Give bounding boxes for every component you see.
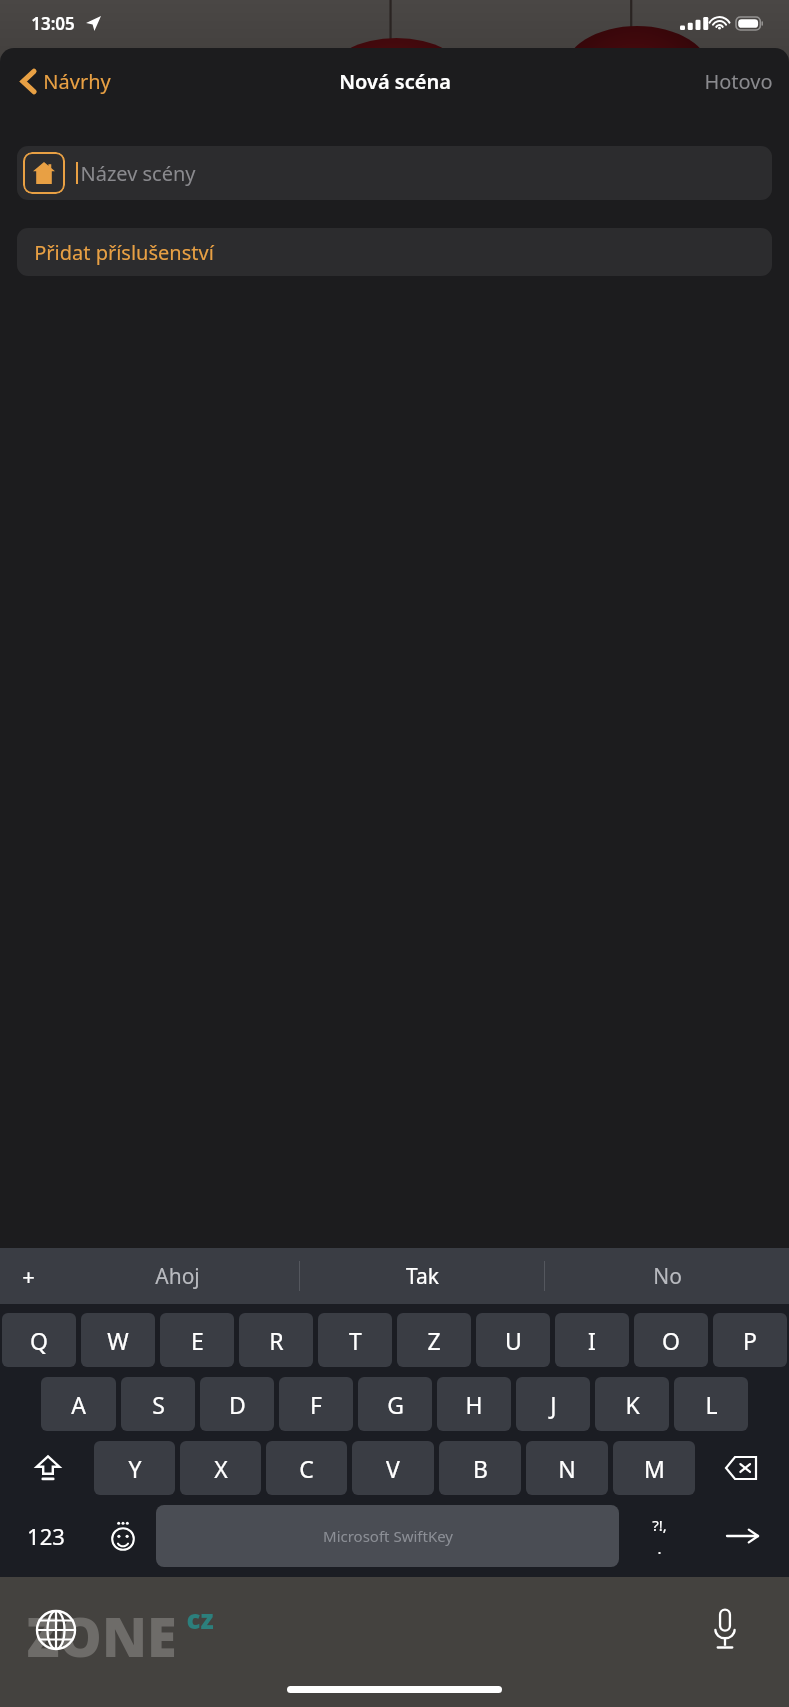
staticText: J (550, 1389, 557, 1420)
staticText: U (505, 1325, 522, 1356)
button[interactable]: Emoji (90, 1505, 156, 1567)
button[interactable]: A (41, 1377, 116, 1431)
button[interactable]: Změnit jazyk (33, 1607, 79, 1653)
button[interactable]: H (437, 1377, 511, 1431)
staticText: P (743, 1325, 757, 1356)
button[interactable]: Přidat (0, 1248, 56, 1304)
staticText: B (473, 1453, 488, 1484)
staticText: G (387, 1389, 404, 1420)
staticText: Z (427, 1325, 441, 1356)
button[interactable]: B (439, 1441, 521, 1495)
button[interactable]: Z (397, 1313, 471, 1367)
button[interactable]: U (476, 1313, 550, 1367)
button[interactable]: Smazat (695, 1441, 787, 1495)
staticText: ZONE (26, 1599, 177, 1673)
button[interactable]: Tak (300, 1248, 544, 1304)
staticText: . (657, 1538, 662, 1558)
staticText: T (349, 1325, 362, 1356)
staticText: Q (30, 1325, 48, 1356)
button[interactable]: R (239, 1313, 313, 1367)
button[interactable]: Hotovo (688, 62, 789, 101)
staticText: R (269, 1325, 284, 1356)
button[interactable]: G (358, 1377, 432, 1431)
button[interactable]: D (200, 1377, 274, 1431)
staticText: 13:05 (31, 12, 75, 35)
staticText: O (662, 1325, 680, 1356)
staticText: Y (128, 1453, 142, 1484)
button[interactable]: T (318, 1313, 392, 1367)
button[interactable]: Interpunkce (619, 1505, 699, 1567)
staticText: E (191, 1325, 204, 1356)
staticText: D (229, 1389, 246, 1420)
staticText: L (705, 1389, 718, 1420)
button[interactable]: W (81, 1313, 155, 1367)
staticText: Návrhy (43, 68, 111, 95)
button[interactable]: E (160, 1313, 234, 1367)
button[interactable]: J (516, 1377, 590, 1431)
button[interactable]: Návrhy (14, 62, 119, 101)
button[interactable]: O (634, 1313, 708, 1367)
button[interactable]: V (352, 1441, 434, 1495)
staticText: Microsoft SwiftKey (323, 1526, 453, 1546)
button[interactable]: Microsoft SwiftKey (156, 1505, 619, 1567)
staticText: 123 (27, 1521, 65, 1551)
button[interactable]: Diktování (701, 1605, 749, 1653)
staticText: + (22, 1261, 35, 1291)
staticText: Přidat příslušenství (34, 239, 214, 266)
staticText: I (588, 1325, 596, 1356)
button[interactable]: Y (94, 1441, 175, 1495)
staticText: M (644, 1453, 665, 1484)
staticText: cz (186, 1601, 214, 1636)
button[interactable]: I (555, 1313, 629, 1367)
staticText: H (465, 1389, 483, 1420)
staticText: Tak (406, 1262, 439, 1291)
button[interactable]: M (613, 1441, 695, 1495)
button[interactable]: L (674, 1377, 748, 1431)
button[interactable]: F (279, 1377, 353, 1431)
staticText: S (152, 1389, 165, 1420)
staticText: V (386, 1453, 400, 1484)
button[interactable]: S (121, 1377, 195, 1431)
staticText: W (107, 1325, 129, 1356)
button[interactable]: P (713, 1313, 787, 1367)
button[interactable]: Ahoj (56, 1248, 299, 1304)
staticText: F (310, 1389, 322, 1420)
staticText: No (653, 1262, 682, 1291)
button[interactable]: 123 (2, 1505, 90, 1567)
staticText: Název scény (80, 160, 196, 187)
button[interactable]: C (266, 1441, 347, 1495)
staticText: Ahoj (155, 1262, 200, 1291)
staticText: N (558, 1453, 576, 1484)
button[interactable]: K (595, 1377, 669, 1431)
staticText: X (214, 1453, 228, 1484)
staticText: K (625, 1389, 640, 1420)
button[interactable]: No (545, 1248, 789, 1304)
button[interactable]: Ikona scény (23, 152, 65, 194)
button[interactable]: N (526, 1441, 608, 1495)
button[interactable]: Shift (2, 1441, 94, 1495)
staticText: C (299, 1453, 314, 1484)
button[interactable]: Enter (699, 1505, 787, 1567)
button[interactable]: X (180, 1441, 261, 1495)
button[interactable]: Q (2, 1313, 76, 1367)
staticText: ?!, (652, 1515, 667, 1535)
staticText: A (71, 1389, 86, 1420)
staticText: Nová scéna (339, 68, 451, 95)
button[interactable]: Přidat příslušenství (17, 228, 772, 276)
button[interactable]: Ikona scény (17, 146, 772, 200)
